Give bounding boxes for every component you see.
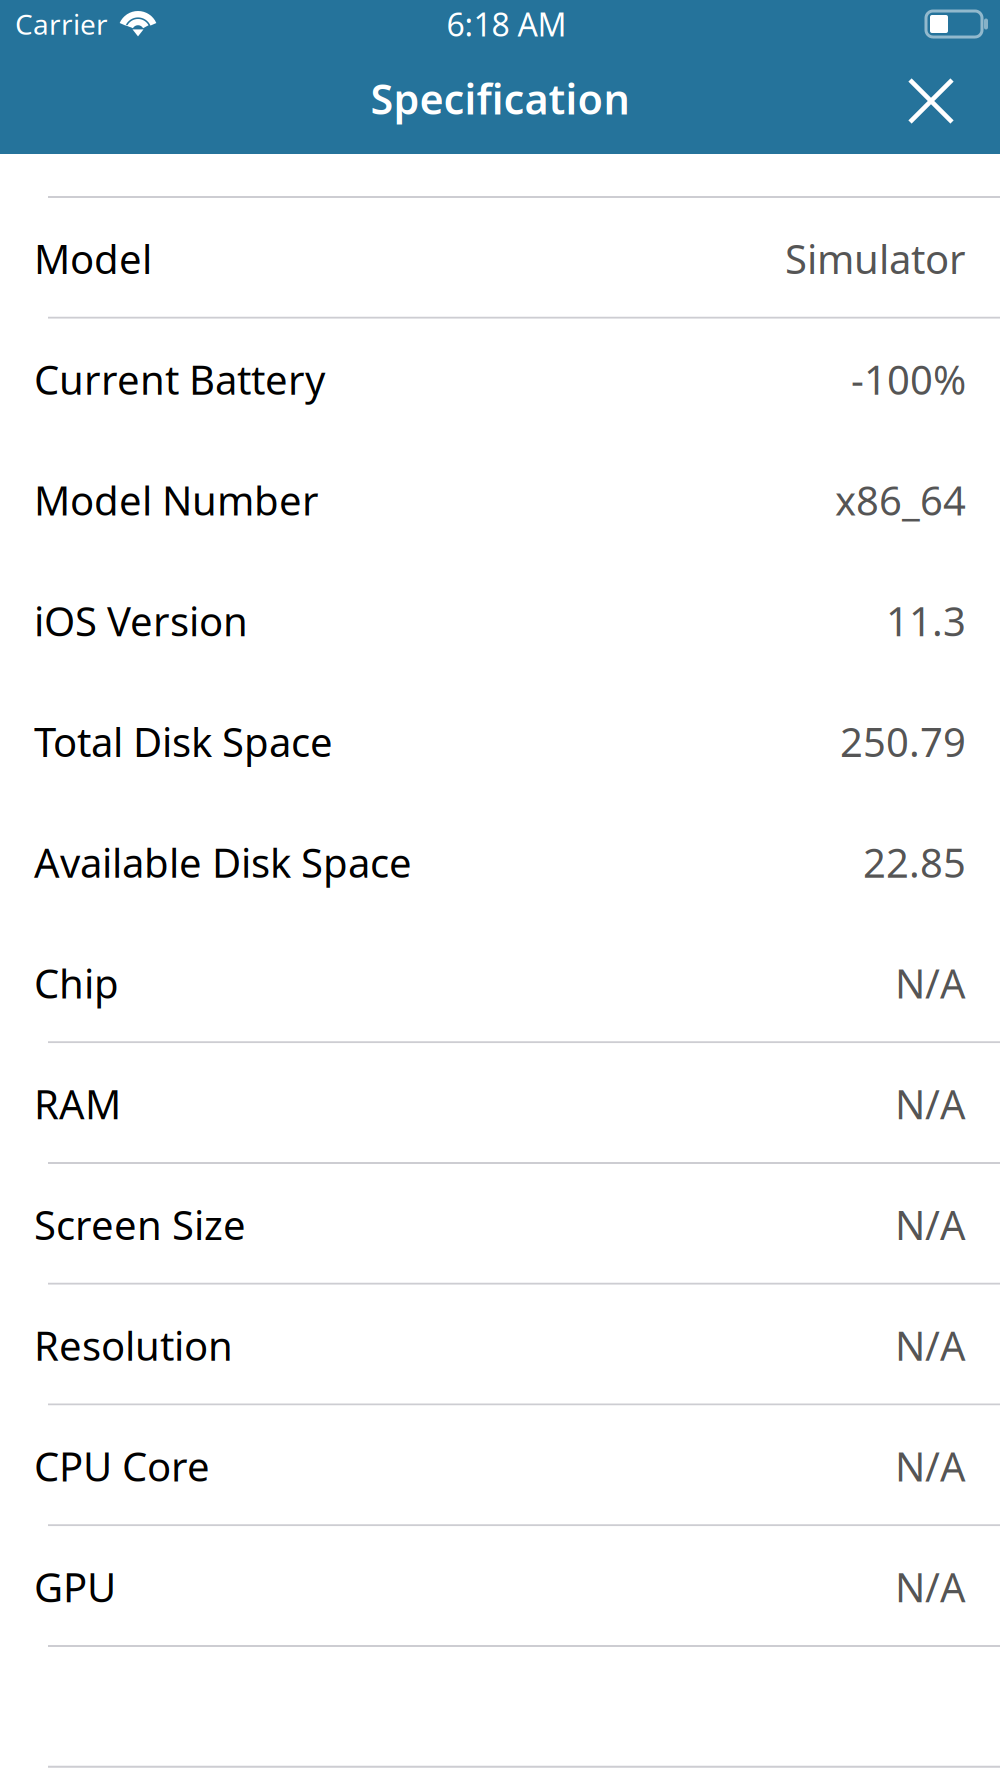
staticText: Simulator xyxy=(785,232,966,285)
staticText: N/A xyxy=(895,1319,966,1372)
staticText: N/A xyxy=(895,1198,966,1251)
button[interactable]: Screen Size xyxy=(0,1164,1000,1285)
button[interactable]: CPU Core xyxy=(0,1405,1000,1526)
staticText: 22.85 xyxy=(863,836,966,889)
button[interactable]: Available Disk Space xyxy=(0,802,1000,923)
staticText: 6:18 AM xyxy=(446,3,566,45)
staticText: N/A xyxy=(895,1077,966,1130)
staticText: 250.79 xyxy=(840,715,966,768)
button[interactable]: Total Disk Space xyxy=(0,681,1000,802)
button[interactable]: iOS Version xyxy=(0,560,1000,681)
staticText: N/A xyxy=(895,956,966,1009)
staticText: -100% xyxy=(851,353,966,406)
staticText: RAM xyxy=(34,1077,121,1130)
button[interactable]: Model xyxy=(0,198,1000,319)
staticText: Screen Size xyxy=(34,1198,246,1251)
staticText: x86_64 xyxy=(835,473,966,526)
button[interactable]: Chip xyxy=(0,922,1000,1043)
button[interactable]: Current Battery xyxy=(0,319,1000,440)
button[interactable]: Model Number xyxy=(0,439,1000,560)
staticText: CPU Core xyxy=(34,1439,210,1492)
button[interactable]: RAM xyxy=(0,1043,1000,1164)
staticText: 11.3 xyxy=(886,594,966,647)
staticText: iOS Version xyxy=(34,594,248,647)
staticText: N/A xyxy=(895,1439,966,1492)
staticText: Available Disk Space xyxy=(34,836,412,889)
staticText: Chip xyxy=(34,956,119,1009)
staticText: Specification xyxy=(370,71,629,126)
staticText: Resolution xyxy=(34,1319,233,1372)
staticText: Total Disk Space xyxy=(34,715,333,768)
staticText: Current Battery xyxy=(34,353,325,406)
staticText: GPU xyxy=(34,1560,116,1613)
button[interactable]: Resolution xyxy=(0,1285,1000,1406)
button[interactable]: GPU xyxy=(0,1526,1000,1647)
button[interactable]: Close xyxy=(885,55,977,147)
staticText: Model Number xyxy=(34,473,319,526)
staticText: Carrier xyxy=(15,5,108,43)
staticText: N/A xyxy=(895,1560,966,1613)
staticText: Model xyxy=(34,232,152,285)
